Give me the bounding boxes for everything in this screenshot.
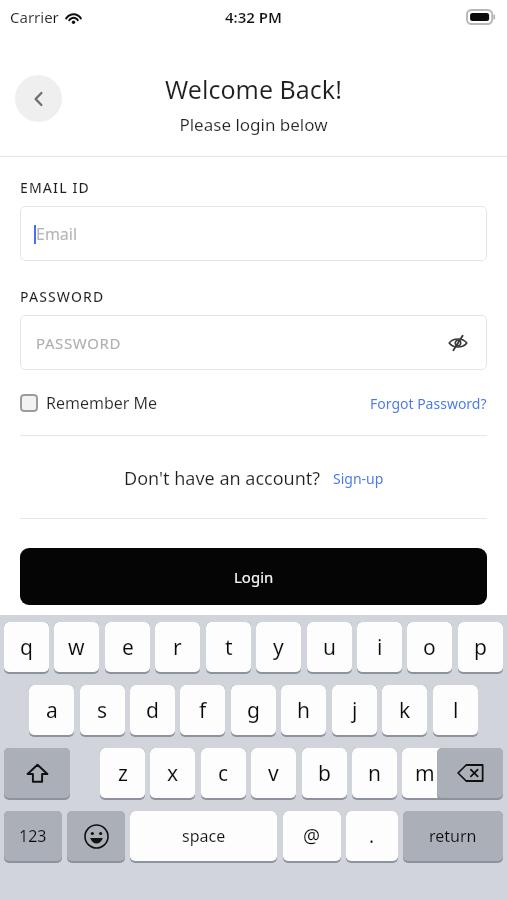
button[interactable]: g — [231, 685, 276, 737]
staticText: y — [273, 633, 284, 662]
button[interactable]: e — [105, 622, 150, 674]
button[interactable]: . — [346, 811, 398, 863]
button[interactable]: d — [130, 685, 175, 737]
staticText: . — [369, 823, 375, 849]
staticText: e — [122, 633, 134, 662]
staticText: o — [423, 633, 436, 662]
staticText: b — [318, 759, 331, 788]
staticText: Forgot Password? — [370, 394, 487, 413]
staticText: r — [173, 633, 182, 662]
staticText: EMAIL ID — [20, 178, 90, 197]
button[interactable]: b — [302, 748, 347, 800]
staticText: l — [453, 696, 459, 725]
button[interactable]: Shift — [4, 748, 70, 800]
button[interactable]: Numbers — [4, 811, 62, 863]
button[interactable]: r — [155, 622, 200, 674]
staticText: Carrier — [10, 7, 59, 27]
button[interactable]: f — [180, 685, 225, 737]
staticText: t — [225, 633, 233, 662]
staticText: @ — [303, 823, 321, 849]
staticText: u — [323, 633, 336, 662]
button[interactable]: @ — [283, 811, 341, 863]
button[interactable]: z — [100, 748, 145, 800]
button[interactable]: Emoji — [67, 811, 125, 863]
button[interactable]: PASSWORD — [20, 315, 487, 370]
button[interactable]: t — [206, 622, 251, 674]
staticText: a — [46, 696, 58, 725]
button[interactable]: Back — [15, 75, 62, 122]
staticText: Remember Me — [46, 392, 158, 414]
button[interactable]: s — [80, 685, 125, 737]
button[interactable]: a — [29, 685, 74, 737]
button[interactable]: Sign-up — [333, 469, 384, 488]
button[interactable]: m — [402, 748, 447, 800]
button[interactable]: c — [201, 748, 246, 800]
staticText: k — [399, 696, 411, 725]
button[interactable]: Return — [403, 811, 503, 863]
button[interactable]: v — [251, 748, 296, 800]
staticText: s — [97, 696, 108, 725]
button[interactable]: q — [4, 622, 49, 674]
button[interactable]: Delete — [437, 748, 503, 800]
button[interactable]: k — [382, 685, 427, 737]
button[interactable]: o — [407, 622, 452, 674]
staticText: Sign-up — [333, 469, 384, 488]
staticText: PASSWORD — [36, 333, 121, 353]
staticText: Please login below — [179, 113, 328, 136]
staticText: x — [167, 759, 179, 788]
button[interactable]: p — [458, 622, 503, 674]
staticText: q — [20, 633, 33, 662]
staticText: PASSWORD — [20, 287, 105, 306]
staticText: f — [199, 696, 207, 725]
button[interactable]: j — [332, 685, 377, 737]
staticText: p — [474, 633, 487, 662]
button[interactable]: Show password — [441, 326, 475, 360]
button[interactable]: Remember Me — [20, 392, 158, 414]
button[interactable]: Email — [20, 206, 487, 261]
staticText: space — [182, 825, 226, 847]
staticText: Welcome Back! — [165, 72, 342, 106]
button[interactable]: l — [433, 685, 478, 737]
staticText: d — [146, 696, 159, 725]
staticText: Login — [234, 567, 274, 587]
staticText: return — [429, 825, 477, 847]
staticText: g — [247, 696, 260, 725]
button[interactable]: space — [130, 811, 277, 863]
staticText: m — [415, 759, 435, 788]
button[interactable]: w — [54, 622, 99, 674]
staticText: c — [218, 759, 229, 788]
staticText: i — [377, 633, 383, 662]
staticText: Don't have an account? — [124, 466, 321, 491]
button[interactable]: n — [352, 748, 397, 800]
staticText: z — [118, 759, 128, 788]
button[interactable]: h — [281, 685, 326, 737]
staticText: Email — [36, 223, 78, 245]
button[interactable]: u — [307, 622, 352, 674]
button[interactable]: Forgot Password? — [370, 394, 487, 413]
staticText: w — [68, 633, 85, 662]
button[interactable]: y — [256, 622, 301, 674]
staticText: 4:32 PM — [225, 7, 282, 27]
button[interactable]: Login — [20, 548, 487, 605]
staticText: v — [268, 759, 279, 788]
button[interactable]: i — [357, 622, 402, 674]
button[interactable]: x — [150, 748, 195, 800]
staticText: h — [297, 696, 310, 725]
staticText: n — [368, 759, 381, 788]
staticText: j — [352, 696, 358, 725]
staticText: 123 — [19, 825, 47, 847]
